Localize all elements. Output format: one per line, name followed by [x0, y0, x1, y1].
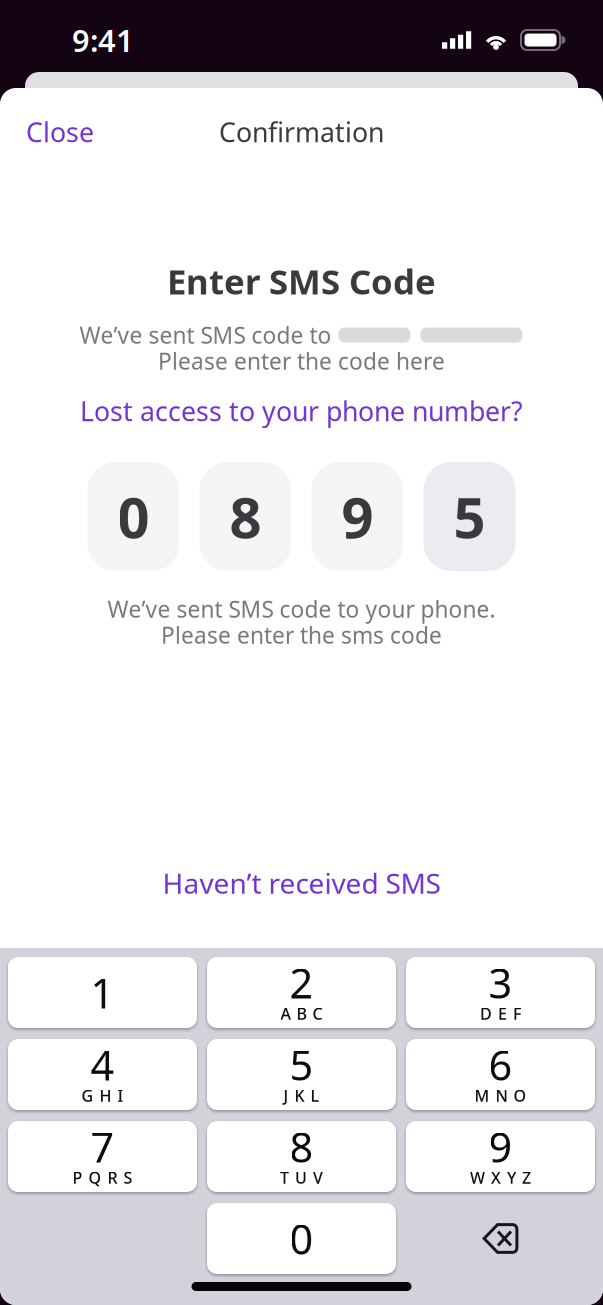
button[interactable]: 9: [406, 1121, 595, 1192]
staticText: Haven’t received SMS: [162, 864, 440, 902]
button[interactable]: 6: [406, 1039, 595, 1110]
button[interactable]: 0: [207, 1203, 396, 1274]
staticText: 8: [229, 479, 261, 554]
staticText: Close: [26, 114, 94, 150]
staticText: M N O: [474, 1085, 526, 1106]
staticText: 6: [488, 1037, 512, 1092]
staticText: A B C: [280, 1003, 322, 1024]
button[interactable]: Haven’t received SMS: [162, 863, 440, 903]
staticText: J K L: [283, 1085, 319, 1106]
staticText: 5: [289, 1037, 313, 1092]
staticText: Confirmation: [219, 114, 384, 150]
staticText: Please enter the code here: [158, 346, 445, 376]
button[interactable]: 4: [8, 1039, 197, 1110]
button[interactable]: 2: [207, 957, 396, 1028]
button[interactable]: 5: [207, 1039, 396, 1110]
button[interactable]: 1: [8, 957, 197, 1028]
button[interactable]: 0: [87, 462, 179, 571]
staticText: 8: [289, 1119, 313, 1174]
button[interactable]: Delete: [406, 1203, 595, 1274]
staticText: 5: [453, 479, 485, 554]
staticText: 9: [341, 479, 373, 554]
staticText: Please enter the sms code: [161, 620, 442, 650]
staticText: 1: [90, 965, 114, 1020]
staticText: P Q R S: [72, 1167, 132, 1188]
staticText: We’ve sent SMS code to: [79, 320, 337, 350]
staticText: Enter SMS Code: [167, 258, 436, 304]
staticText: G H I: [81, 1085, 123, 1106]
button[interactable]: Close: [26, 114, 94, 150]
staticText: 0: [289, 1211, 313, 1266]
staticText: W X Y Z: [470, 1167, 531, 1188]
staticText: 4: [90, 1037, 114, 1092]
staticText: Lost access to your phone number?: [80, 393, 523, 429]
button[interactable]: 8: [199, 462, 291, 571]
staticText: T U V: [280, 1167, 323, 1188]
button[interactable]: 3: [406, 957, 595, 1028]
staticText: 3: [488, 955, 512, 1010]
button[interactable]: 8: [207, 1121, 396, 1192]
staticText: 2: [289, 955, 313, 1010]
button[interactable]: 5: [423, 462, 515, 571]
button[interactable]: 7: [8, 1121, 197, 1192]
button[interactable]: Lost access to your phone number?: [0, 388, 603, 434]
staticText: 9: [488, 1119, 512, 1174]
staticText: We’ve sent SMS code to your phone.: [107, 594, 495, 624]
staticText: D E F: [480, 1003, 521, 1024]
staticText: 0: [117, 479, 149, 554]
staticText: 9:41: [72, 20, 134, 60]
staticText: 7: [90, 1119, 114, 1174]
button[interactable]: 9: [311, 462, 403, 571]
